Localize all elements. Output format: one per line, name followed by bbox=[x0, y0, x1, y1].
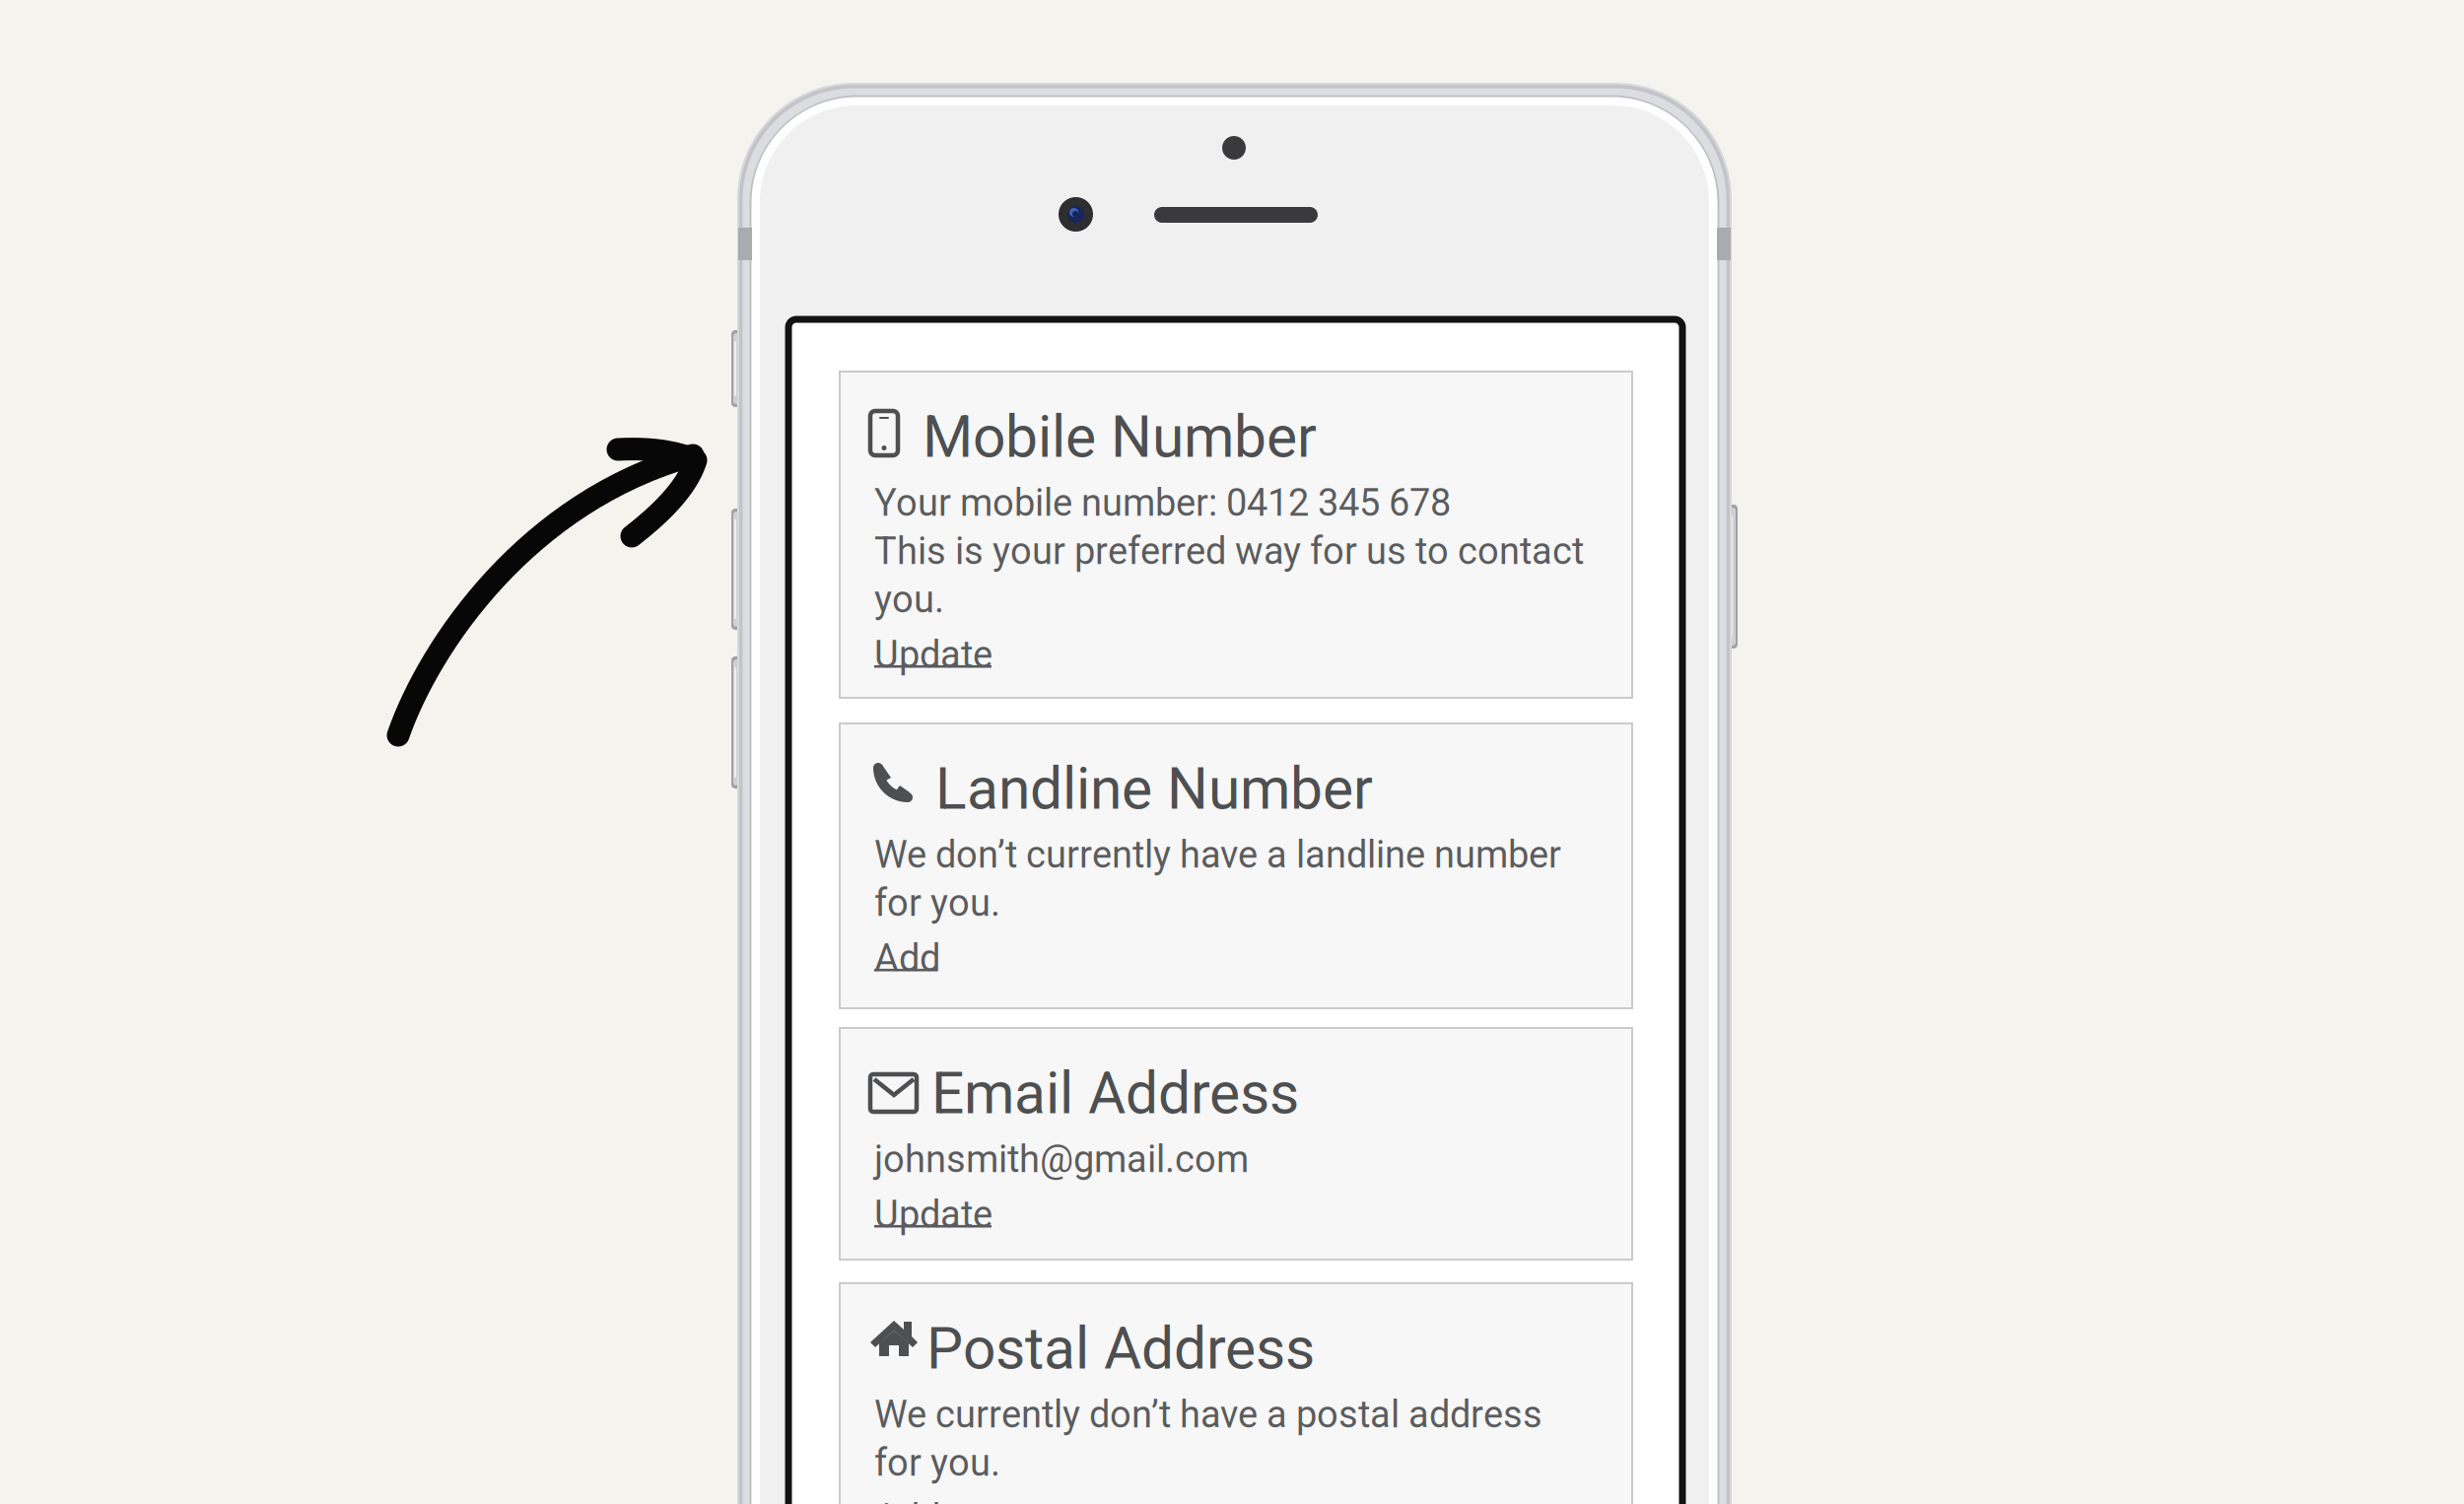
staticText: for you. bbox=[874, 881, 1000, 925]
button[interactable]: Update bbox=[874, 1193, 992, 1236]
button[interactable]: Add bbox=[874, 1496, 940, 1504]
staticText: We currently don’t have a postal address bbox=[874, 1393, 1542, 1436]
staticText: Email Address bbox=[931, 1060, 1299, 1127]
staticText: This is your preferred way for us to con… bbox=[874, 529, 1584, 573]
staticText: We don’t currently have a landline numbe… bbox=[874, 833, 1561, 877]
button[interactable]: Add bbox=[874, 936, 940, 980]
staticText: for you. bbox=[874, 1441, 1000, 1485]
staticText: Mobile Number bbox=[923, 403, 1317, 471]
staticText: Landline Number bbox=[935, 755, 1373, 823]
staticText: Postal Address bbox=[926, 1315, 1315, 1383]
staticText: Add bbox=[874, 936, 940, 980]
staticText: Update bbox=[874, 1193, 992, 1236]
button[interactable]: Update bbox=[874, 633, 992, 677]
staticText: Your mobile number: 0412 345 678 bbox=[874, 481, 1451, 525]
staticText: johnsmith@gmail.com bbox=[874, 1137, 1249, 1181]
staticText: Update bbox=[874, 633, 992, 677]
staticText: you. bbox=[874, 578, 944, 621]
staticText: Add bbox=[874, 1496, 940, 1504]
